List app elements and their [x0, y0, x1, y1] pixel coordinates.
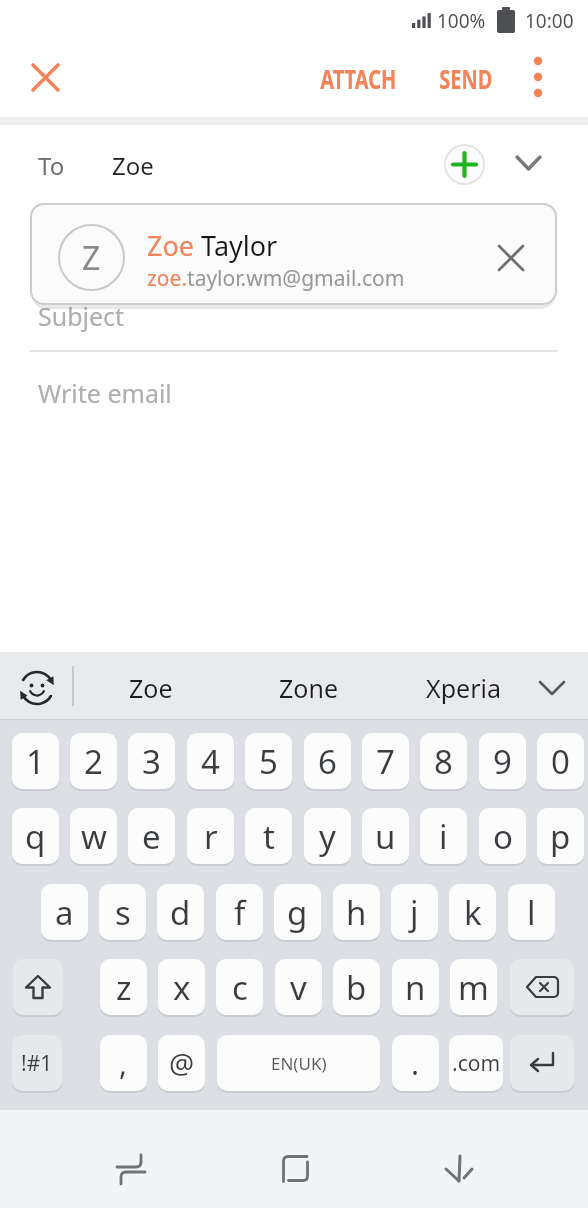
staticText: Z [82, 236, 101, 280]
staticText: !#1 [21, 1049, 53, 1078]
staticText: zoe.taylor.wm@gmail.com [147, 264, 405, 293]
staticText: 9 [493, 739, 512, 784]
staticText: r [204, 814, 218, 859]
staticText: @ [169, 1044, 195, 1082]
staticText: a [55, 890, 74, 935]
staticText: 3 [142, 739, 161, 784]
staticText: k [464, 890, 482, 935]
staticText: EN(UK) [271, 1052, 327, 1075]
staticText: n [405, 965, 426, 1010]
staticText: x [173, 965, 191, 1010]
staticText: 4 [201, 739, 220, 784]
staticText: e [142, 814, 161, 859]
staticText: ATTACH [320, 60, 396, 97]
staticText: y [319, 814, 336, 859]
staticText: o [493, 814, 513, 859]
staticText: Zoe [129, 671, 173, 705]
staticText: Write email [38, 376, 172, 410]
staticText: Zone [279, 671, 338, 705]
staticText: q [25, 814, 46, 859]
staticText: i [439, 814, 448, 859]
staticText: d [170, 890, 191, 935]
staticText: 7 [376, 739, 395, 784]
staticText: 1 [26, 739, 45, 784]
staticText: u [375, 814, 396, 859]
staticText: h [346, 890, 367, 935]
staticText: 10:00 [525, 8, 574, 34]
staticText: p [550, 814, 571, 859]
staticText: f [234, 890, 246, 935]
staticText: Zoe [112, 149, 154, 182]
staticText: To [38, 149, 65, 182]
staticText: 5 [259, 739, 278, 784]
staticText: 8 [434, 739, 453, 784]
staticText: .com [452, 1049, 501, 1078]
staticText: 6 [318, 739, 337, 784]
staticText: 100% [437, 8, 486, 34]
staticText: c [232, 965, 248, 1010]
staticText: s [115, 890, 131, 935]
staticText: 2 [84, 739, 103, 784]
staticText: . [411, 1043, 420, 1084]
staticText: 0 [551, 739, 570, 784]
staticText: j [410, 890, 419, 935]
staticText: m [458, 965, 489, 1010]
staticText: t [263, 814, 275, 859]
staticText: w [81, 814, 107, 859]
staticText: , [119, 1043, 128, 1084]
staticText: Xperia [426, 671, 501, 705]
staticText: z [116, 965, 132, 1010]
staticText: g [287, 890, 308, 935]
staticText: l [527, 890, 536, 935]
staticText: SEND [439, 60, 493, 97]
staticText: Subject [38, 299, 125, 333]
staticText: b [346, 965, 367, 1010]
staticText: v [290, 965, 307, 1010]
staticText: Zoe Taylor [147, 227, 278, 264]
